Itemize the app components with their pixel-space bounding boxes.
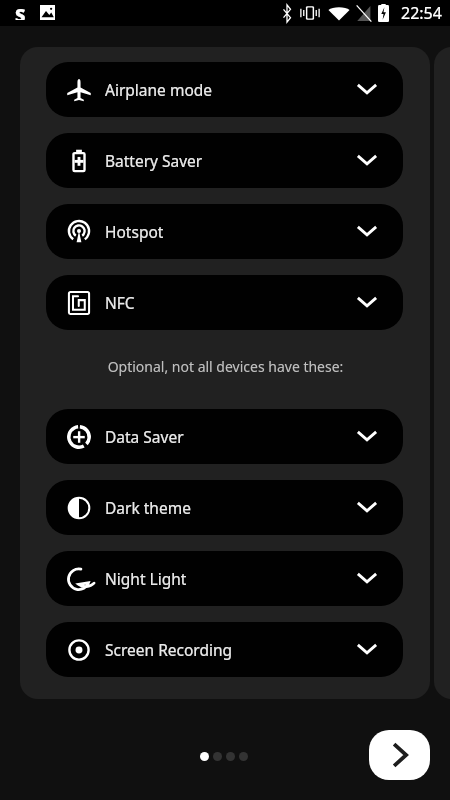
staticText: Screen Recording (105, 639, 233, 660)
staticText: Battery Saver (105, 150, 203, 171)
button[interactable]: Screen Recording (46, 622, 403, 677)
button[interactable]: Data Saver (46, 409, 403, 464)
button[interactable]: Dark theme (46, 480, 403, 535)
staticText: Airplane mode (105, 79, 213, 100)
button[interactable]: Night Light (46, 551, 403, 606)
staticText: Night Light (105, 568, 187, 589)
button[interactable]: Battery Saver (46, 133, 403, 188)
staticText: Hotspot (105, 221, 164, 242)
button[interactable]: Hotspot (46, 204, 403, 259)
staticText: Data Saver (105, 426, 184, 447)
staticText: Optional, not all devices have these: (21, 357, 430, 376)
button[interactable]: Next page (369, 730, 430, 780)
button[interactable]: NFC (46, 275, 403, 330)
staticText: Dark theme (105, 497, 191, 518)
button[interactable]: Airplane mode (46, 62, 403, 117)
staticText: NFC (105, 292, 135, 313)
staticText: 22:54 (401, 2, 442, 24)
staticText: S (15, 3, 26, 20)
